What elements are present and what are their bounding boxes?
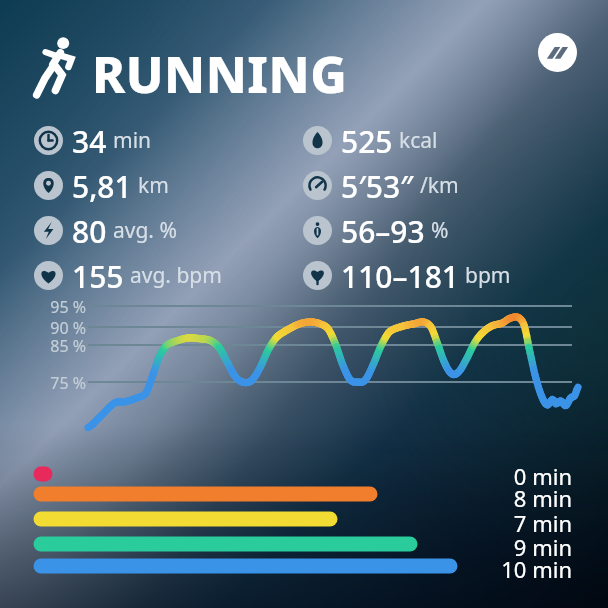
staticText: 525 [341,121,393,159]
staticText: 95 % [28,296,86,608]
button[interactable]: 5′53″ [303,166,459,204]
staticText: 56–93 [341,211,425,249]
button[interactable]: 0 min [452,461,572,608]
staticText: 90 % [28,317,86,608]
staticText: 155 [72,256,124,294]
staticText: 110–181 [341,256,459,294]
staticText: 80 [72,211,107,249]
button[interactable]: 5,81 [34,166,169,204]
other: Running activity [32,36,84,98]
staticText: 5′53″ [341,166,414,204]
staticText: 85 % [28,335,86,608]
button[interactable]: App logo [538,33,577,72]
staticText: 34 [72,121,107,159]
staticText: 0 min [452,461,572,608]
button[interactable]: 7 min [452,508,572,608]
button[interactable]: 525 [303,121,438,159]
button[interactable]: 110–181 [303,256,511,294]
staticText: avg. bpm [130,261,222,290]
staticText: % [431,216,449,245]
staticText: kcal [399,126,438,155]
staticText: km [138,171,169,200]
button[interactable]: 80 [34,211,177,249]
staticText: bpm [465,261,511,290]
staticText: 10 min [452,554,572,608]
button[interactable]: 9 min [452,532,572,608]
button[interactable]: 56–93 [303,211,449,249]
button[interactable]: 10 min [452,554,572,608]
staticText: 75 % [28,372,86,608]
staticText: /km [420,171,459,200]
button[interactable]: 8 min [452,483,572,608]
staticText: 5,81 [72,166,132,204]
staticText: avg. % [113,216,177,245]
button[interactable]: 155 [34,256,222,294]
staticText: 7 min [452,508,572,608]
staticText: min [113,126,152,155]
staticText: 8 min [452,483,572,608]
button[interactable]: 34 [34,121,152,159]
staticText: 9 min [452,532,572,608]
staticText: RUNNING [92,40,348,108]
